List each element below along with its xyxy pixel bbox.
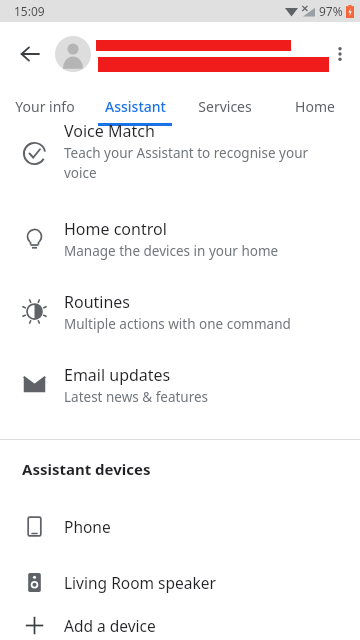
staticText: Home (295, 97, 335, 116)
button[interactable]: Living Room speaker (0, 554, 360, 610)
button[interactable]: Account (55, 36, 91, 72)
staticText: Email updates (64, 364, 171, 386)
staticText: 15:09 (14, 3, 45, 19)
button[interactable]: More options (320, 34, 360, 74)
button[interactable]: Routines (0, 275, 360, 348)
button[interactable]: Services (180, 86, 270, 126)
staticText: Routines (64, 291, 131, 313)
staticText: Manage the devices in your home (64, 242, 279, 260)
staticText: Assistant (105, 97, 166, 116)
button[interactable]: Phone (0, 498, 360, 554)
staticText: Assistant devices (22, 459, 151, 479)
staticText: Voice Match (64, 120, 155, 142)
staticText: Multiple actions with one command (64, 315, 291, 333)
staticText: Home control (64, 218, 167, 240)
button[interactable]: Back (8, 32, 52, 76)
button[interactable]: Voice Match (0, 126, 360, 202)
staticText: 97% (319, 3, 343, 19)
staticText: Living Room speaker (64, 572, 216, 593)
button[interactable]: Assistant (90, 86, 180, 126)
staticText: Add a device (64, 615, 156, 636)
button[interactable]: Your info (0, 86, 90, 126)
button[interactable]: Home (270, 86, 360, 126)
staticText: Services (198, 97, 252, 116)
staticText: Teach your Assistant to recognise your v… (64, 144, 309, 182)
staticText: Latest news & features (64, 388, 209, 406)
staticText: Phone (64, 516, 111, 537)
button[interactable]: Home control (0, 202, 360, 275)
staticText: Your info (15, 97, 75, 116)
button[interactable]: Email updates (0, 348, 360, 421)
button[interactable]: Add a device (0, 610, 360, 640)
